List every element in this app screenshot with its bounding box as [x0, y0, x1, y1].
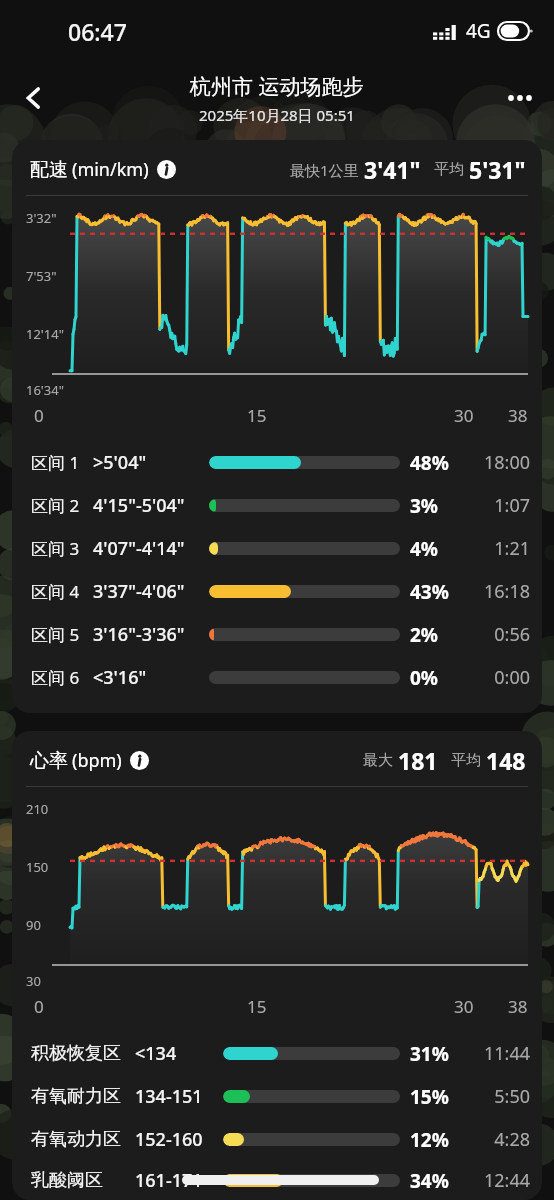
staticText: 配速 [30, 158, 68, 182]
staticText: 平均 [434, 160, 464, 179]
staticText: 4% [410, 536, 462, 562]
staticText: 区间 5 [31, 623, 93, 646]
button[interactable]: Back [10, 74, 58, 122]
staticText: 4'07"-4'14" [93, 536, 209, 561]
staticText: 有氧耐力区 [31, 1085, 135, 1108]
other: Info [157, 160, 176, 179]
staticText: 148 [486, 745, 526, 776]
button[interactable]: Info [157, 160, 176, 179]
button[interactable]: 区间 1 [12, 441, 542, 484]
staticText: 18:00 [462, 450, 530, 475]
staticText: 2025年10月28日 05:51 [199, 105, 355, 125]
staticText: 0 [34, 404, 44, 427]
button[interactable]: More options [496, 74, 544, 122]
staticText: 3'16"-3'36" [93, 622, 209, 647]
staticText: 4'15"-5'04" [93, 493, 209, 518]
button[interactable]: 积极恢复区 [12, 1032, 542, 1075]
staticText: 0% [410, 665, 462, 691]
staticText: 30 [454, 995, 474, 1018]
staticText: 3'37"-4'06" [93, 579, 209, 604]
staticText: 34% [410, 1168, 462, 1194]
staticText: 4G [466, 18, 491, 44]
staticText: 4:28 [462, 1127, 530, 1152]
staticText: 乳酸阈区 [31, 1169, 135, 1192]
staticText: 区间 4 [31, 580, 93, 603]
staticText: 3'41" [364, 154, 421, 185]
staticText: 心率 [30, 749, 68, 773]
staticText: 区间 3 [31, 537, 93, 560]
staticText: 06:47 [68, 16, 127, 47]
staticText: 最快1公里 [290, 160, 359, 180]
staticText: 161-171 [135, 1168, 223, 1193]
staticText: 31% [410, 1041, 462, 1067]
staticText: 区间 2 [31, 494, 93, 517]
staticText: 区间 1 [31, 451, 93, 474]
staticText: 38 [508, 404, 528, 427]
staticText: 12'14" [26, 325, 64, 343]
staticText: 15% [410, 1084, 462, 1110]
staticText: >5'04" [93, 450, 209, 475]
staticText: 5:50 [462, 1084, 530, 1109]
staticText: 杭州市 运动场跑步 [190, 72, 364, 101]
staticText: 2% [410, 622, 462, 648]
staticText: 16'34" [26, 381, 64, 399]
staticText: 平均 [451, 751, 481, 770]
button[interactable]: 区间 6 [12, 656, 542, 699]
button[interactable]: 区间 4 [12, 570, 542, 613]
staticText: 1:21 [462, 536, 530, 561]
button[interactable]: 区间 2 [12, 484, 542, 527]
staticText: 90 [26, 916, 41, 934]
staticText: <3'16" [93, 665, 209, 690]
staticText: 150 [26, 858, 49, 876]
staticText: 38 [508, 995, 528, 1018]
staticText: 0 [34, 995, 44, 1018]
staticText: 152-160 [135, 1127, 223, 1152]
staticText: (bpm) [72, 748, 122, 773]
staticText: 积极恢复区 [31, 1042, 135, 1065]
button[interactable]: 乳酸阈区 [12, 1161, 542, 1200]
staticText: 30 [26, 972, 41, 990]
staticText: 30 [454, 404, 474, 427]
button[interactable]: Info [130, 751, 149, 770]
staticText: 5'31" [469, 154, 526, 185]
staticText: 43% [410, 579, 462, 605]
staticText: 15 [247, 995, 267, 1018]
staticText: 48% [410, 450, 462, 476]
staticText: 11:44 [462, 1041, 530, 1066]
staticText: 0:56 [462, 622, 530, 647]
staticText: 15 [247, 404, 267, 427]
staticText: 有氧动力区 [31, 1128, 135, 1151]
staticText: (min/km) [72, 157, 149, 182]
staticText: 3% [410, 493, 462, 519]
staticText: 最大 [363, 751, 393, 770]
staticText: 12:44 [462, 1168, 530, 1193]
button[interactable]: 有氧耐力区 [12, 1075, 542, 1118]
staticText: 181 [398, 745, 438, 776]
staticText: 0:00 [462, 665, 530, 690]
staticText: 区间 6 [31, 666, 93, 689]
staticText: 3'32" [26, 209, 57, 227]
other: Info [130, 751, 149, 770]
button[interactable]: 区间 5 [12, 613, 542, 656]
staticText: 7'53" [26, 267, 57, 285]
button[interactable]: 区间 3 [12, 527, 542, 570]
button[interactable]: 有氧动力区 [12, 1118, 542, 1161]
staticText: 210 [26, 800, 49, 818]
staticText: 16:18 [462, 579, 530, 604]
staticText: <134 [135, 1041, 223, 1066]
staticText: 1:07 [462, 493, 530, 518]
staticText: 134-151 [135, 1084, 223, 1109]
staticText: 12% [410, 1127, 462, 1153]
